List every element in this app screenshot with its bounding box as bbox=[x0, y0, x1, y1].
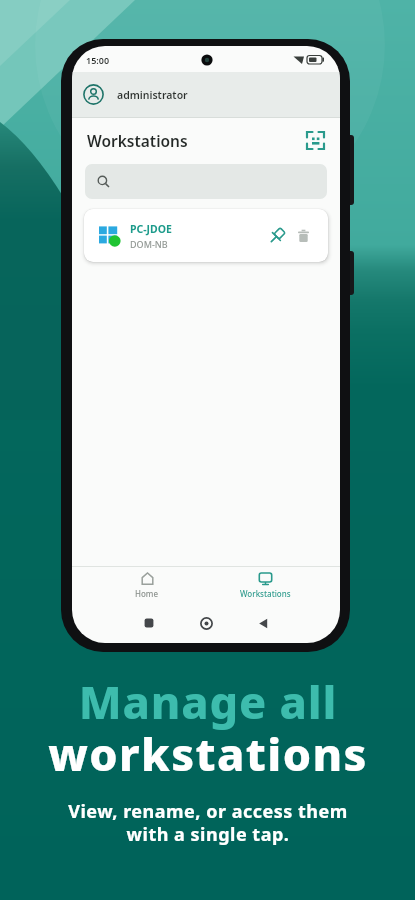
button[interactable]: PC-JDOE bbox=[84, 209, 328, 262]
button[interactable] bbox=[200, 617, 213, 630]
staticText: administrator bbox=[117, 88, 188, 102]
button[interactable]: Workstations bbox=[206, 567, 324, 603]
staticText: DOM-NB bbox=[130, 238, 168, 250]
button[interactable] bbox=[258, 618, 269, 629]
button[interactable] bbox=[297, 229, 310, 242]
button[interactable]: administrator bbox=[72, 72, 340, 117]
staticText: Workstations bbox=[240, 588, 291, 599]
staticText: PC-JDOE bbox=[130, 222, 172, 236]
staticText: Workstations bbox=[87, 130, 188, 151]
staticText: Manage all workstations bbox=[48, 671, 368, 784]
button[interactable] bbox=[267, 226, 287, 246]
button[interactable]: Home bbox=[88, 567, 206, 603]
button[interactable] bbox=[85, 164, 327, 199]
button[interactable] bbox=[306, 131, 325, 150]
staticText: 15:00 bbox=[86, 54, 110, 66]
button[interactable] bbox=[144, 618, 154, 628]
staticText: View, rename, or access them with a sing… bbox=[68, 799, 348, 846]
staticText: Home bbox=[135, 588, 159, 599]
